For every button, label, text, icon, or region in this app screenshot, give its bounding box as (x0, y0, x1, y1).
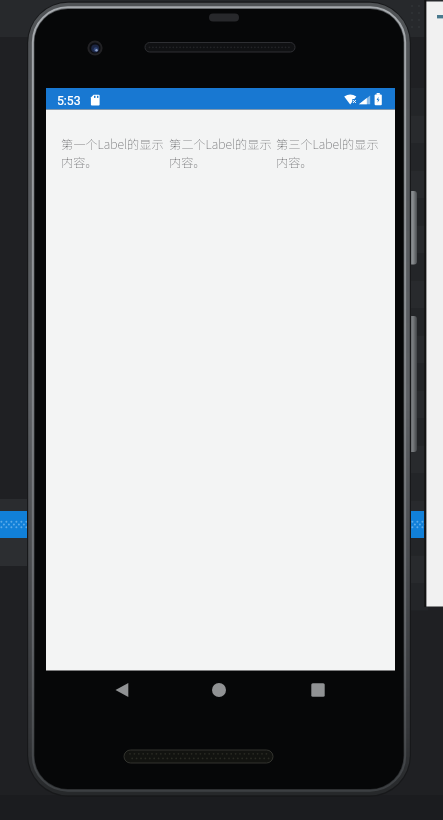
button[interactable] (197, 672, 241, 707)
staticText: 第二个Label的显示 内容。 (169, 135, 272, 170)
button[interactable] (296, 672, 340, 707)
staticText: 第三个Label的显示 内容。 (276, 135, 379, 170)
button[interactable] (100, 672, 144, 707)
staticText: 5:53 (57, 94, 81, 108)
staticText: 第一个Label的显示 内容。 (61, 135, 164, 170)
